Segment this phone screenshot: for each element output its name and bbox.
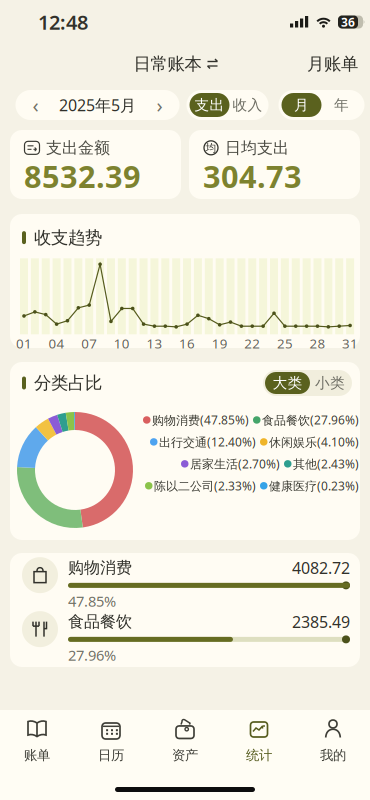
staticText: 收支趋势 (34, 227, 102, 248)
staticText: 小类 (315, 374, 345, 392)
staticText: 月 (294, 96, 309, 114)
staticText: 16 (179, 334, 195, 352)
staticText: 购物消费(47.85%) (152, 412, 249, 428)
staticText: 统计 (246, 747, 272, 763)
staticText: 健康医疗(0.23%) (269, 478, 359, 494)
staticText: 陈以二公司(2.33%) (154, 478, 256, 494)
staticText: 28 (309, 334, 325, 352)
staticText: 日历 (98, 747, 124, 763)
staticText: 支出 (194, 96, 224, 114)
staticText: 25 (277, 334, 293, 352)
staticText: 购物消费 (68, 558, 132, 578)
staticText: 10 (114, 334, 130, 352)
staticText: 04 (49, 334, 65, 352)
staticText: 出行交通(12.40%) (159, 434, 256, 450)
staticText: 31 (342, 334, 358, 352)
staticText: 食品餐饮(27.96%) (262, 412, 359, 428)
staticText: 22 (244, 334, 260, 352)
staticText: 均 (205, 141, 216, 154)
staticText: 居家生活(2.70%) (190, 456, 280, 472)
staticText: 19 (212, 334, 228, 352)
staticText: 8532.39 (24, 156, 141, 196)
staticText: 月账单 (307, 53, 358, 75)
staticText: 07 (81, 334, 97, 352)
staticText: 304.73 (203, 156, 302, 196)
staticText: 47.85% (68, 591, 116, 611)
staticText: 13 (146, 334, 162, 352)
staticText: 年 (334, 96, 349, 114)
staticText: 36 (341, 14, 355, 30)
staticText: 我的 (320, 747, 346, 763)
staticText: 收入 (232, 96, 262, 114)
staticText: 食品餐饮 (68, 612, 132, 632)
staticText: 支出金额 (46, 138, 110, 158)
staticText: 其他(2.43%) (293, 456, 359, 472)
staticText: 休闲娱乐(4.10%) (269, 434, 359, 450)
staticText: 资产 (172, 747, 198, 763)
staticText: 4082.72 (292, 557, 350, 578)
staticText: 01 (16, 334, 32, 352)
staticText: 大类 (272, 374, 302, 392)
staticText: 分类占比 (34, 372, 102, 394)
staticText: ‹ (32, 92, 38, 118)
staticText: 2025年5月 (59, 94, 136, 116)
staticText: 2385.49 (292, 611, 350, 632)
staticText: 27.96% (68, 645, 116, 665)
staticText: 账单 (24, 747, 50, 763)
staticText: 12:48 (38, 9, 88, 35)
staticText: 日常账本 (133, 53, 201, 75)
staticText: › (156, 92, 162, 118)
staticText: 日均支出 (225, 138, 289, 158)
